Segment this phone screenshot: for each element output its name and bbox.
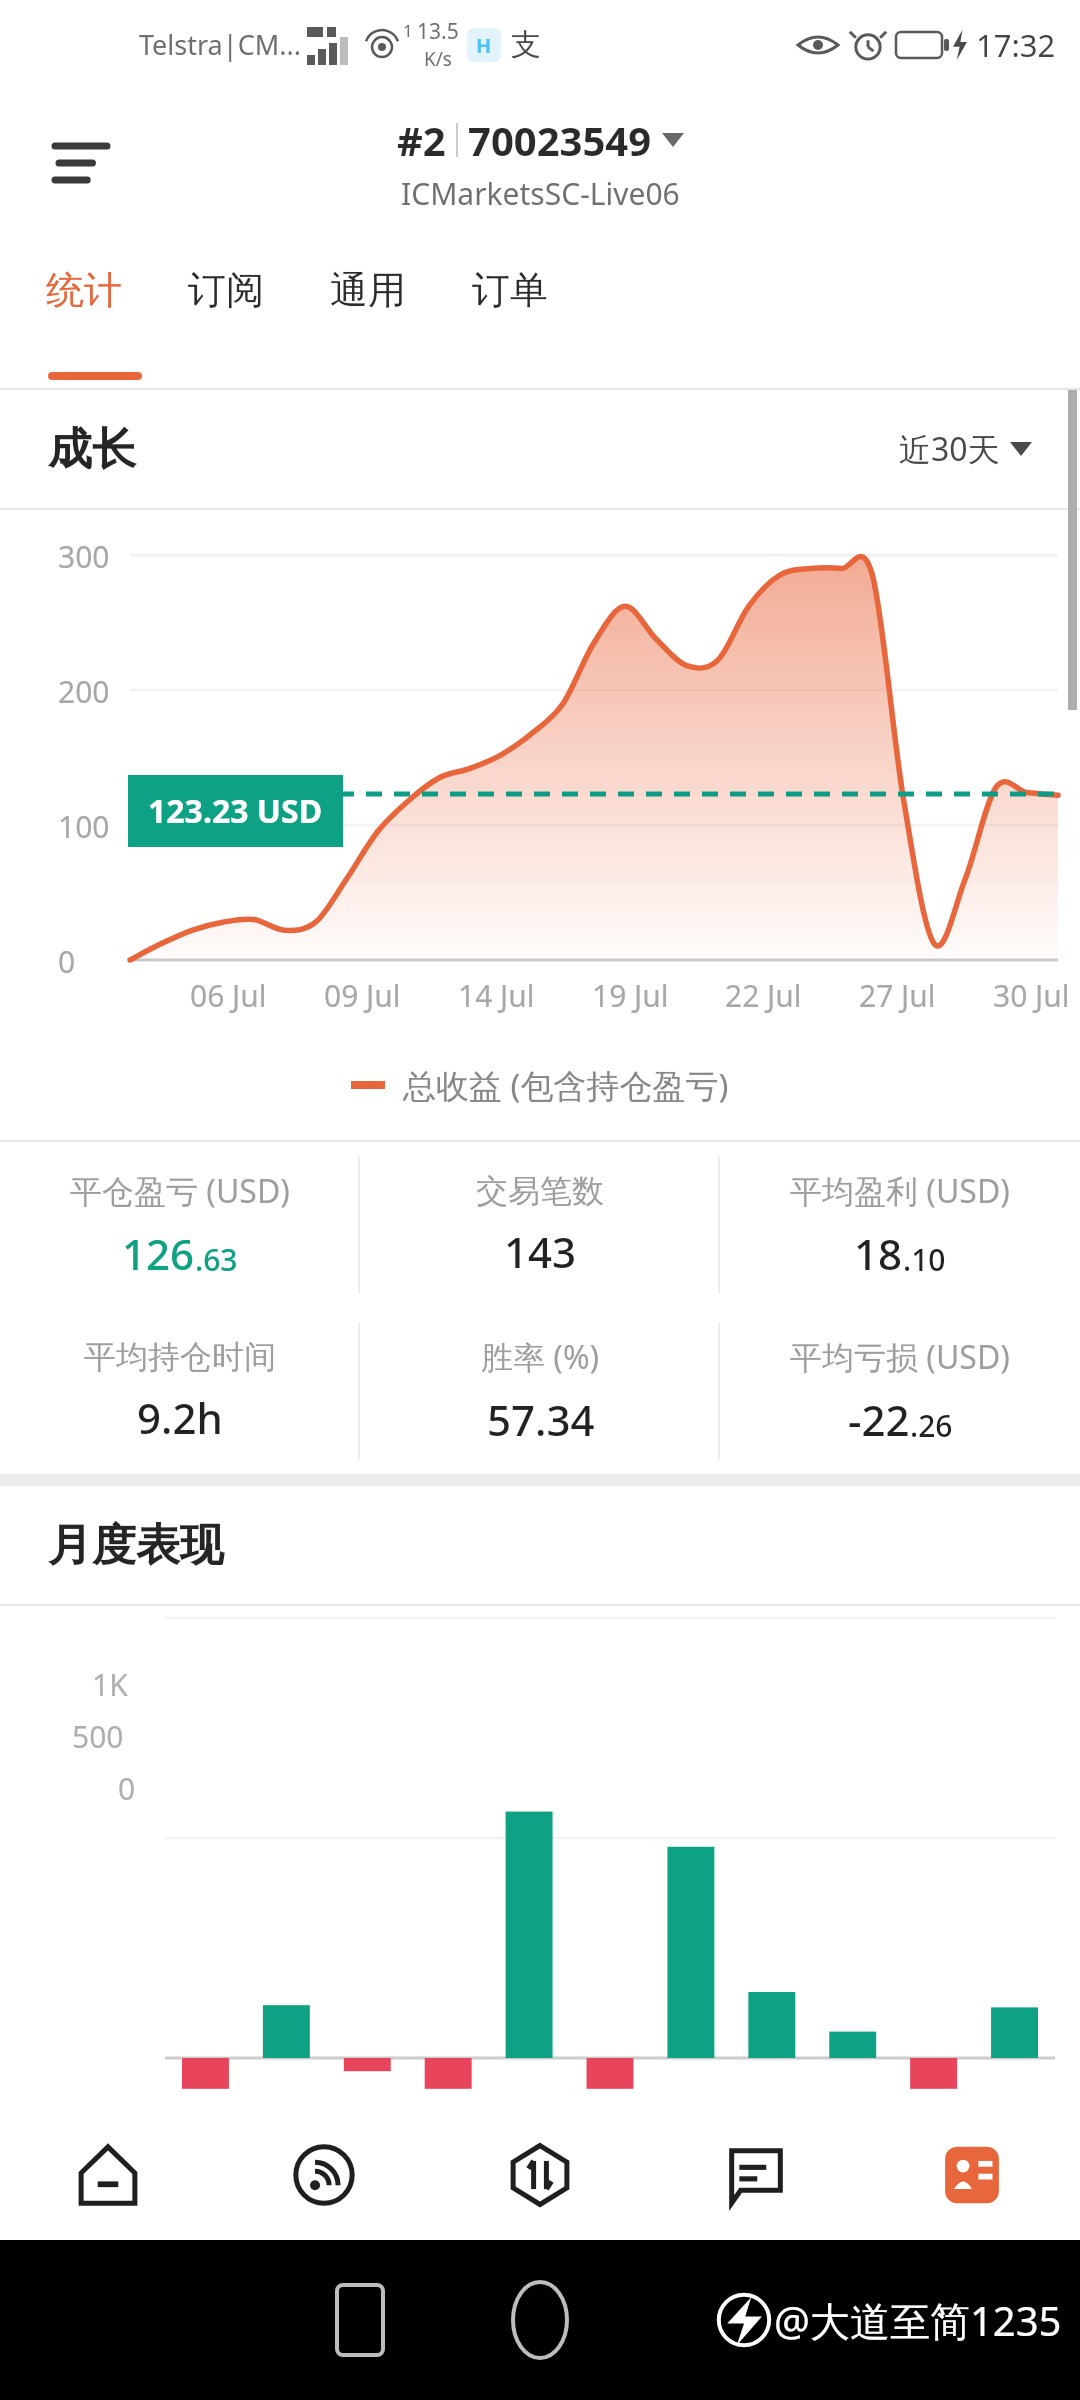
- staticText: 0: [118, 1768, 136, 1809]
- staticText: 平均持仓时间: [84, 1337, 276, 1377]
- staticText: -22: [848, 1391, 910, 1448]
- button[interactable]: Menu: [46, 128, 116, 198]
- button[interactable]: Home: [0, 2110, 216, 2240]
- button[interactable]: Trade: [432, 2110, 648, 2240]
- staticText: 27 Jul: [859, 975, 936, 1016]
- staticText: 平均亏损 (USD): [790, 1335, 1010, 1379]
- button[interactable]: 平仓盈亏 (USD): [0, 1142, 360, 1308]
- staticText: 成长: [48, 422, 136, 477]
- button[interactable]: 近30天: [899, 427, 1032, 471]
- staticText: Telstra|CM...: [139, 26, 301, 63]
- staticText: 0: [58, 941, 122, 982]
- button[interactable]: 交易笔数: [360, 1142, 720, 1308]
- button[interactable]: Signals: [216, 2110, 432, 2240]
- staticText: .10: [903, 1239, 946, 1280]
- staticText: 06 Jul: [190, 975, 267, 1016]
- button[interactable]: 订单: [472, 266, 548, 314]
- button[interactable]: #2: [397, 113, 684, 214]
- button[interactable]: 胜率 (%): [360, 1308, 720, 1474]
- staticText: K/s: [424, 46, 452, 72]
- staticText: .63: [195, 1239, 238, 1280]
- staticText: 月度表现: [48, 1518, 224, 1573]
- staticText: 300: [58, 536, 122, 577]
- staticText: ICMarketsSC-Live06: [401, 173, 680, 214]
- button[interactable]: Profile: [864, 2110, 1080, 2240]
- staticText: 13.5: [417, 17, 459, 46]
- button[interactable]: Messages: [648, 2110, 864, 2240]
- staticText: 19 Jul: [592, 975, 669, 1016]
- staticText: #2: [397, 113, 446, 167]
- staticText: 总收益 (包含持仓盈亏): [403, 1063, 729, 1108]
- staticText: 通用: [330, 266, 406, 314]
- staticText: 123.23 USD: [148, 789, 323, 833]
- staticText: @大道至简1235: [774, 2293, 1062, 2348]
- staticText: 143: [504, 1223, 577, 1280]
- staticText: 126: [122, 1225, 195, 1282]
- staticText: 30 Jul: [993, 975, 1070, 1016]
- staticText: 14 Jul: [458, 975, 535, 1016]
- staticText: 100: [58, 806, 122, 847]
- staticText: 500: [72, 1716, 124, 1757]
- staticText: 近30天: [899, 427, 1000, 471]
- staticText: 支: [511, 26, 541, 64]
- staticText: 胜率 (%): [481, 1335, 600, 1379]
- staticText: 订阅: [188, 266, 264, 314]
- staticText: 09 Jul: [324, 975, 401, 1016]
- staticText: H: [476, 32, 492, 59]
- button[interactable]: 通用: [330, 266, 406, 314]
- staticText: .26: [910, 1405, 953, 1446]
- staticText: 22 Jul: [725, 975, 802, 1016]
- button[interactable]: 订阅: [188, 266, 264, 314]
- button[interactable]: 平均亏损 (USD): [720, 1308, 1080, 1474]
- staticText: 70023549: [468, 113, 652, 167]
- staticText: 17:32: [976, 24, 1056, 66]
- staticText: 平均盈利 (USD): [790, 1169, 1010, 1213]
- staticText: 订单: [472, 266, 548, 314]
- staticText: 9.2h: [137, 1389, 223, 1446]
- staticText: 平仓盈亏 (USD): [70, 1169, 290, 1213]
- staticText: 交易笔数: [476, 1171, 604, 1211]
- button[interactable]: 统计: [46, 266, 122, 314]
- staticText: 200: [58, 671, 122, 712]
- staticText: 统计: [46, 266, 122, 314]
- button[interactable]: 平均持仓时间: [0, 1308, 360, 1474]
- button[interactable]: 平均盈利 (USD): [720, 1142, 1080, 1308]
- staticText: 1: [403, 19, 413, 42]
- staticText: 57.34: [487, 1391, 595, 1448]
- staticText: 18: [854, 1225, 903, 1282]
- staticText: 1K: [92, 1664, 128, 1705]
